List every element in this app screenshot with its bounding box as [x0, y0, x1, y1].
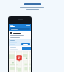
- button[interactable]: [21, 43, 30, 45]
- button[interactable]: Search: [10, 28, 30, 30]
- button[interactable]: Search: [9, 24, 31, 31]
